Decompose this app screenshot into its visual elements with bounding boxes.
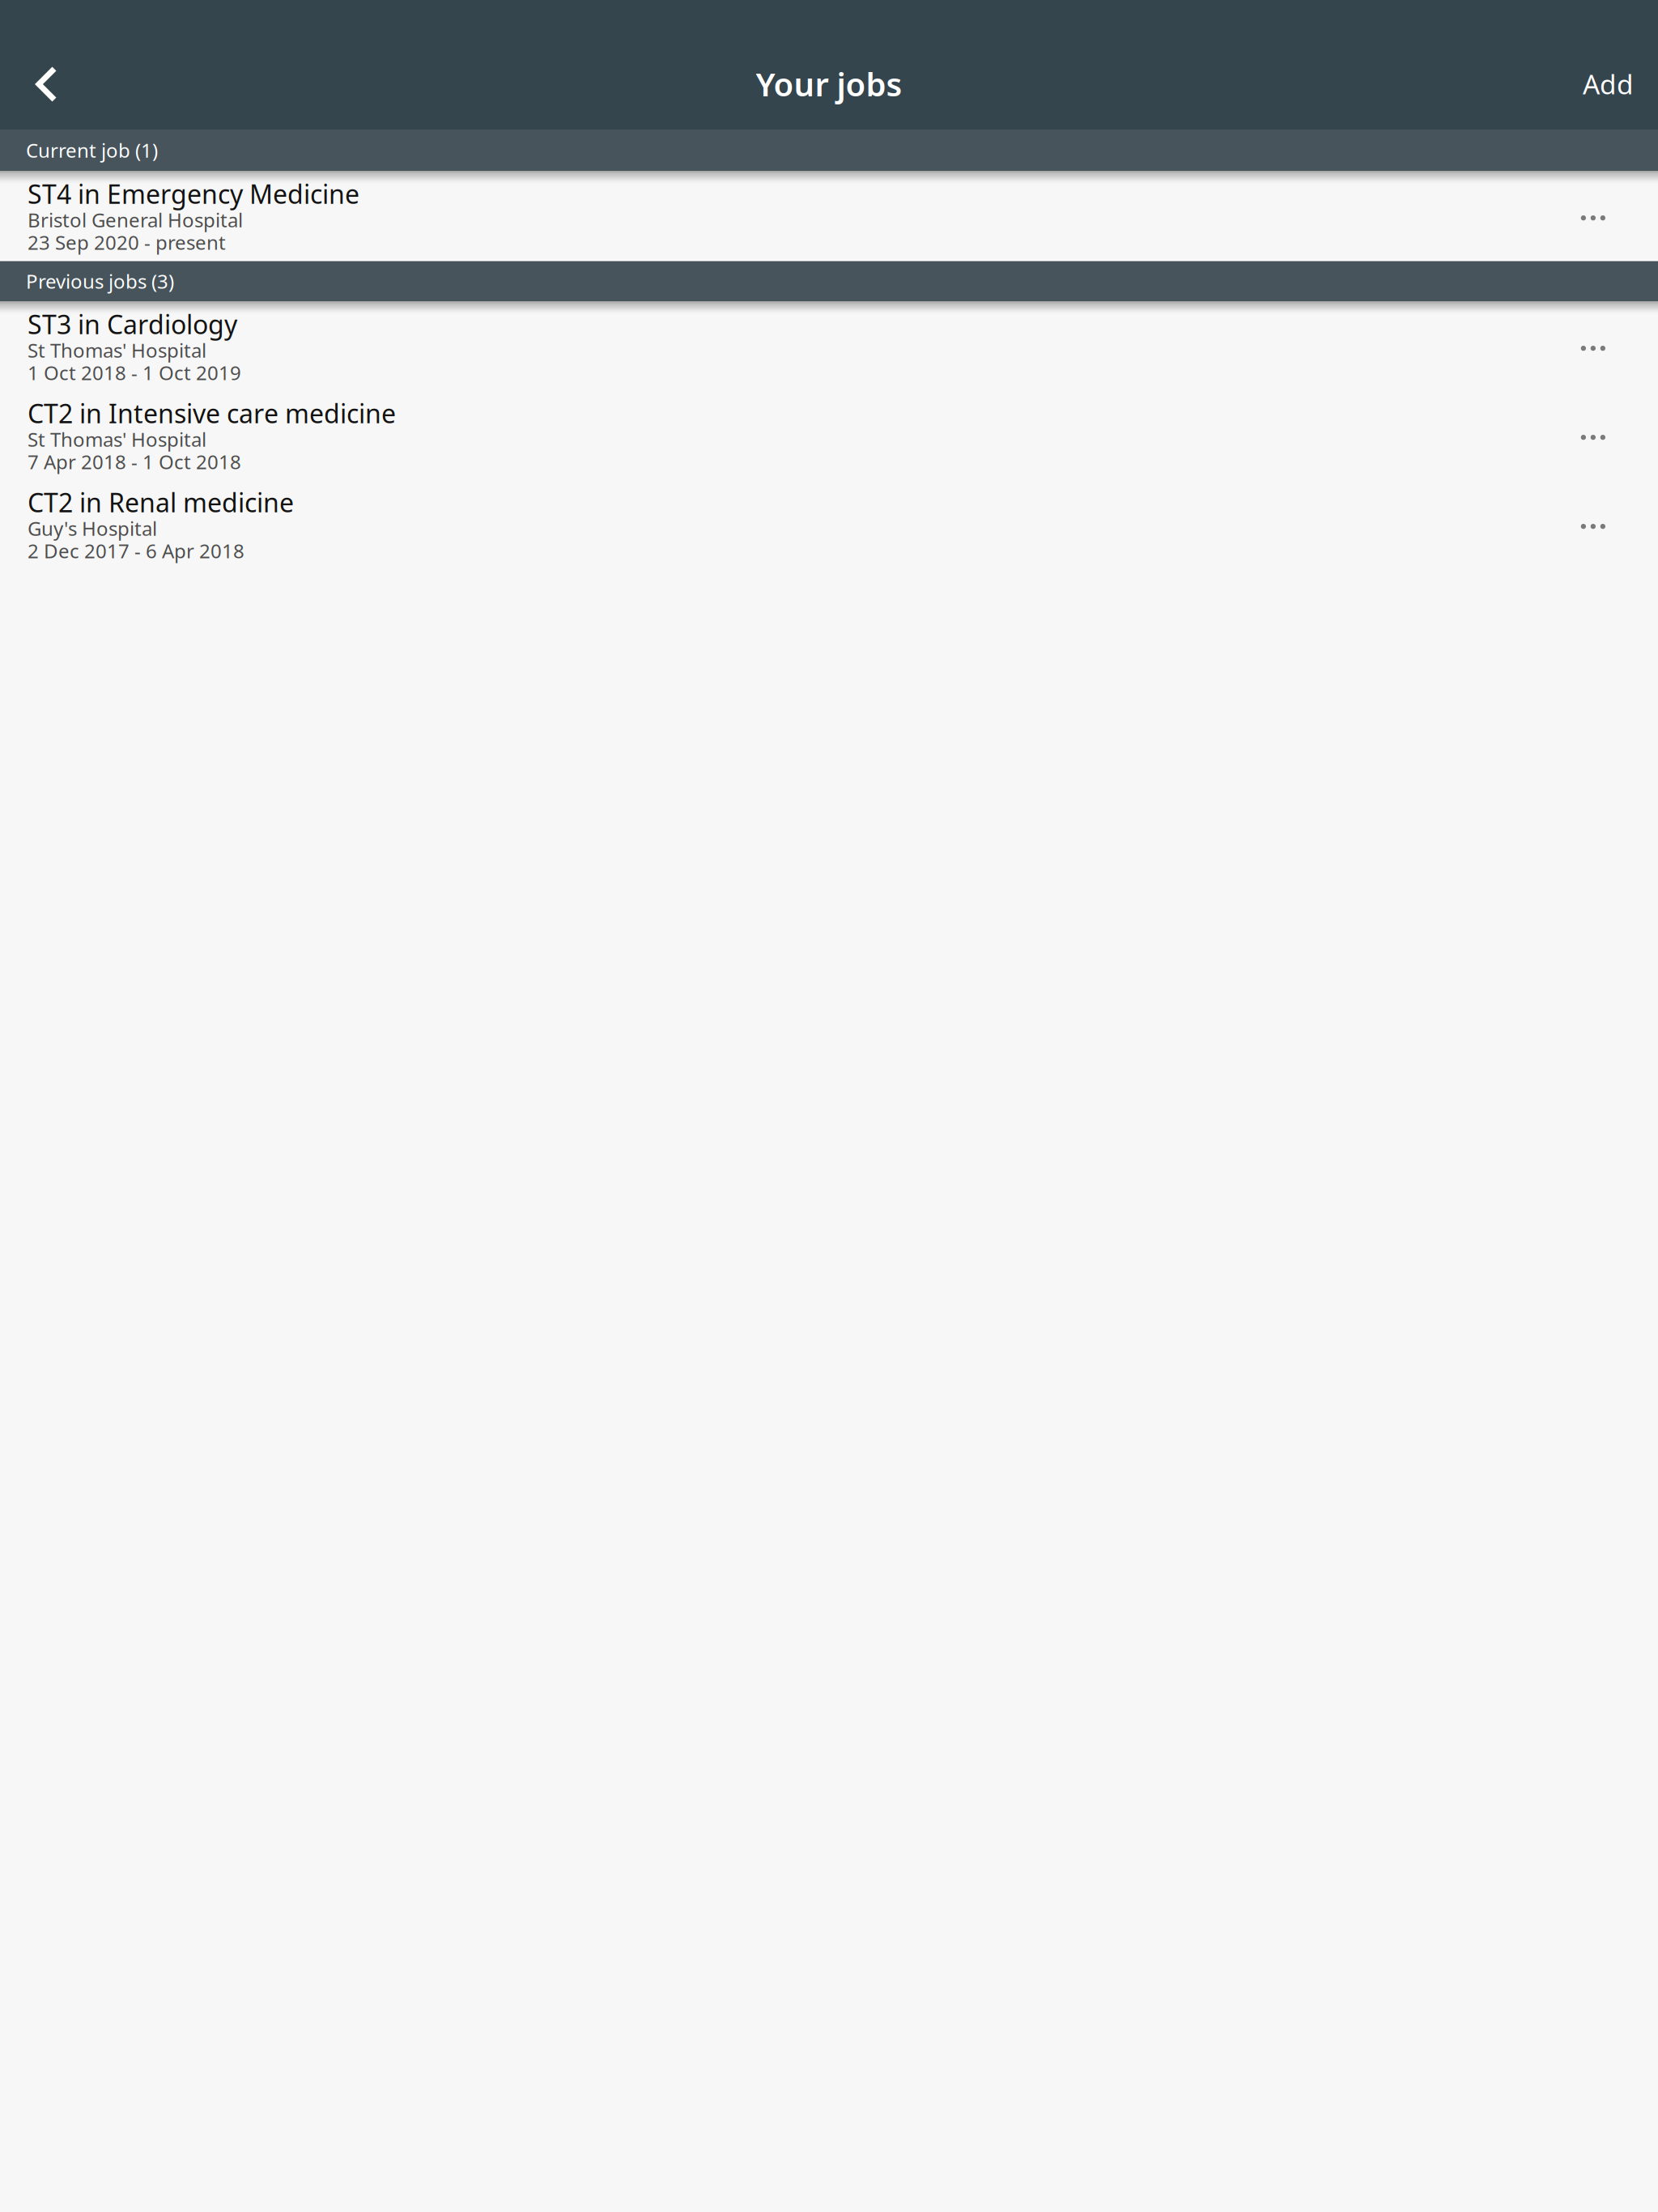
- staticText: 7 Apr 2018 - 1 Oct 2018: [28, 449, 241, 475]
- staticText: Add: [1583, 66, 1634, 102]
- button[interactable]: More options for CT2 in Intensive care m…: [1557, 390, 1658, 479]
- button[interactable]: ST3 in Cardiology: [0, 301, 1557, 390]
- staticText: 1 Oct 2018 - 1 Oct 2019: [28, 360, 241, 386]
- staticText: CT2 in Renal medicine: [28, 485, 294, 519]
- button[interactable]: Back: [0, 38, 82, 130]
- staticText: 23 Sep 2020 - present: [28, 229, 226, 255]
- button[interactable]: More options for ST3 in Cardiology: [1557, 301, 1658, 390]
- staticText: ST4 in Emergency Medicine: [28, 177, 359, 211]
- staticText: Previous jobs (3): [26, 268, 174, 294]
- staticText: Current job (1): [26, 137, 158, 163]
- staticText: St Thomas' Hospital: [28, 337, 206, 363]
- button[interactable]: ST4 in Emergency Medicine: [0, 171, 1557, 260]
- staticText: CT2 in Intensive care medicine: [28, 396, 396, 430]
- staticText: ST3 in Cardiology: [28, 307, 237, 341]
- button[interactable]: Add: [1583, 38, 1658, 130]
- staticText: Your jobs: [756, 62, 902, 105]
- staticText: St Thomas' Hospital: [28, 426, 206, 452]
- staticText: 2 Dec 2017 - 6 Apr 2018: [28, 538, 244, 564]
- button[interactable]: More options for ST4 in Emergency Medici…: [1557, 171, 1658, 260]
- button[interactable]: More options for CT2 in Renal medicine: [1557, 479, 1658, 568]
- staticText: Bristol General Hospital: [28, 207, 243, 233]
- button[interactable]: CT2 in Intensive care medicine: [0, 390, 1557, 479]
- staticText: Guy's Hospital: [28, 515, 157, 541]
- button[interactable]: CT2 in Renal medicine: [0, 479, 1557, 568]
